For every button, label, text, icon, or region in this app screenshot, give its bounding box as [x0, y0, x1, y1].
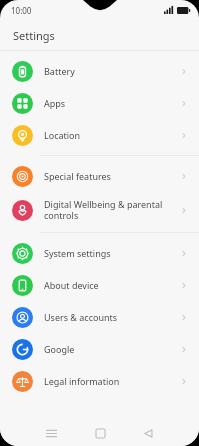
button[interactable]: System settings	[0, 237, 199, 269]
button[interactable]: Recent apps	[36, 420, 66, 446]
staticText: Location	[44, 129, 180, 141]
button[interactable]: Digital Wellbeing & parental controls	[0, 192, 199, 228]
button[interactable]: Legal information	[0, 365, 199, 397]
staticText: Apps	[44, 97, 180, 109]
button[interactable]: Special features	[0, 160, 199, 192]
staticText: Settings	[13, 28, 55, 43]
button[interactable]: Home	[85, 420, 115, 446]
button[interactable]: Location	[0, 119, 199, 151]
staticText: System settings	[44, 247, 180, 259]
staticText: Special features	[44, 170, 180, 182]
staticText: Battery	[44, 65, 180, 77]
button[interactable]: Apps	[0, 87, 199, 119]
staticText: About device	[44, 279, 180, 291]
staticText: 10:00	[11, 5, 32, 16]
button[interactable]: Users & accounts	[0, 301, 199, 333]
button[interactable]: Battery	[0, 55, 199, 87]
button[interactable]: Back	[133, 420, 163, 446]
button[interactable]: Google	[0, 333, 199, 365]
staticText: Legal information	[44, 375, 180, 387]
button[interactable]: About device	[0, 269, 199, 301]
staticText: Digital Wellbeing & parental controls	[44, 198, 180, 222]
staticText: Google	[44, 343, 180, 355]
staticText: Users & accounts	[44, 311, 180, 323]
